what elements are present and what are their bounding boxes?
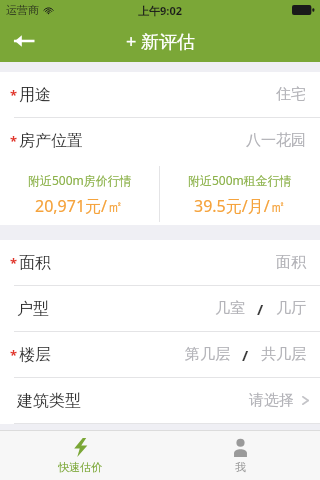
button[interactable]: 户型	[0, 286, 320, 331]
staticText: *	[10, 86, 18, 104]
staticText: 建筑类型	[17, 391, 81, 411]
button[interactable]: 我	[160, 431, 320, 480]
staticText: + 新评估	[126, 29, 195, 54]
button[interactable]: 快速估价	[0, 431, 160, 480]
staticText: *	[10, 132, 18, 150]
staticText: 20,971元/㎡	[35, 195, 124, 217]
button[interactable]: 附近500m租金行情	[160, 163, 320, 225]
staticText: 户型	[17, 299, 49, 319]
staticText: *	[10, 346, 18, 364]
button[interactable]: *	[0, 332, 320, 377]
staticText: 请选择	[249, 391, 294, 410]
staticText: 八一花园	[246, 131, 306, 150]
staticText: 上午9:02	[138, 3, 182, 18]
staticText: 住宅	[276, 85, 306, 104]
staticText: 房产位置	[19, 131, 83, 151]
button[interactable]: *	[0, 72, 320, 117]
staticText: 面积	[276, 253, 306, 272]
staticText: 我	[235, 460, 246, 474]
staticText: 共几层	[261, 345, 306, 364]
staticText: 附近500m房价行情	[28, 172, 132, 188]
staticText: 第几层	[185, 345, 230, 364]
staticText: 附近500m租金行情	[188, 172, 292, 188]
staticText: /	[242, 345, 249, 365]
staticText: 面积	[19, 253, 51, 273]
staticText: /	[257, 299, 264, 319]
staticText: 运营商	[6, 3, 39, 17]
button[interactable]: *	[0, 240, 320, 285]
staticText: 39.5元/月/㎡	[194, 195, 286, 217]
staticText: *	[10, 254, 18, 272]
button[interactable]: Back	[0, 20, 48, 62]
staticText: 快速估价	[58, 460, 102, 474]
staticText: 用途	[19, 85, 51, 105]
staticText: 几厅	[276, 299, 306, 318]
button[interactable]: 建筑类型	[0, 378, 320, 423]
staticText: 楼层	[19, 345, 51, 365]
button[interactable]: 附近500m房价行情	[0, 163, 159, 225]
button[interactable]: *	[0, 118, 320, 163]
staticText: 几室	[215, 299, 245, 318]
